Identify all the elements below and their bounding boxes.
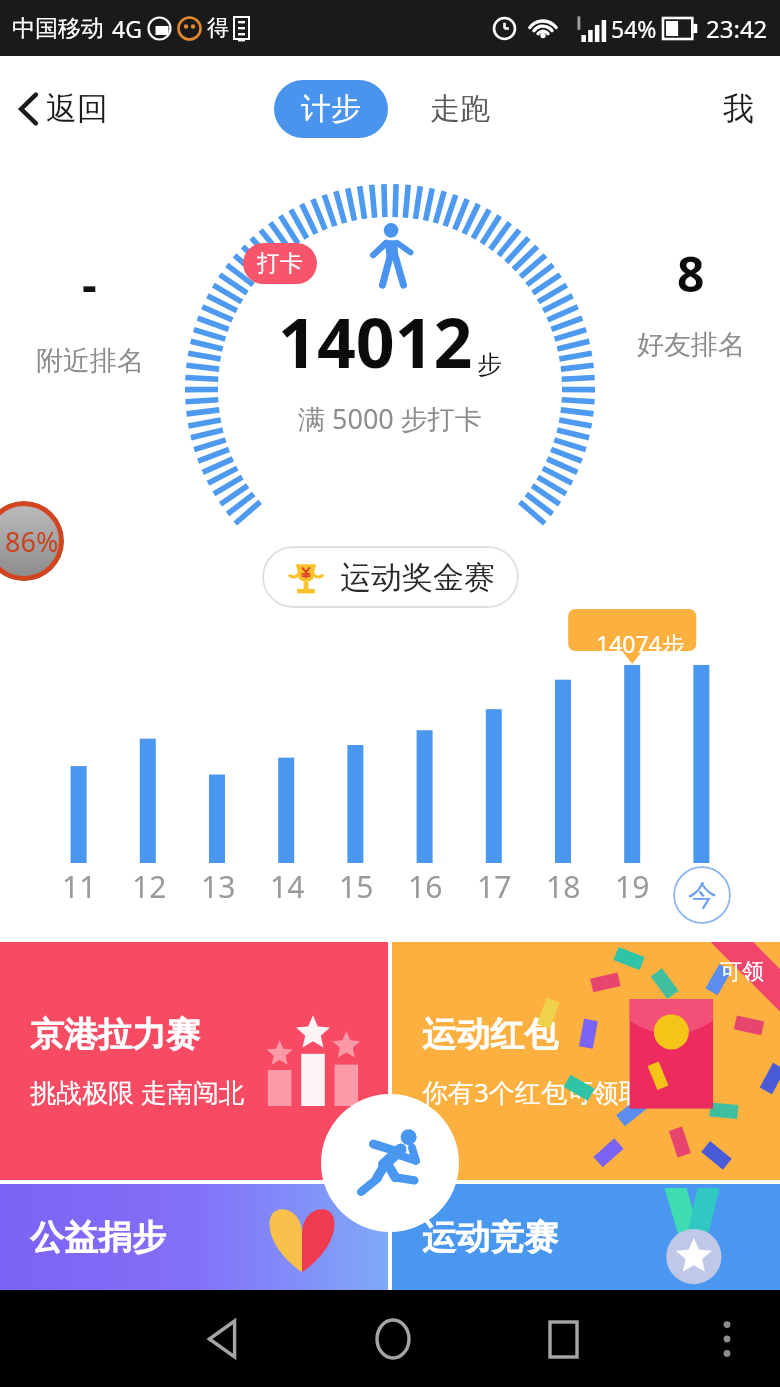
staticText: 中国移动 — [12, 14, 104, 43]
button[interactable]: 16 — [391, 866, 460, 907]
button[interactable]: Back — [185, 1302, 259, 1376]
staticText: 86% — [5, 523, 59, 560]
staticText: 你有3个红包可领取 — [422, 1074, 645, 1110]
button[interactable]: 运动红包 — [392, 942, 780, 1180]
button[interactable]: 11 — [44, 866, 114, 907]
button[interactable]: Recent apps — [526, 1302, 600, 1376]
button[interactable]: 8 — [613, 241, 768, 362]
staticText: 今 — [688, 877, 717, 914]
staticText: 附近排名 — [36, 344, 144, 378]
button[interactable]: 运动竞赛 — [392, 1184, 780, 1290]
staticText: 18 — [546, 866, 581, 907]
staticText: 12 — [132, 866, 167, 907]
button[interactable]: 返回 — [10, 81, 116, 136]
staticText: - — [82, 253, 97, 316]
staticText: 返回 — [46, 89, 108, 128]
button[interactable]: 运动奖金赛 — [262, 546, 519, 608]
staticText: 步 — [477, 349, 502, 380]
button[interactable]: 13 — [184, 866, 253, 907]
staticText: 打卡 — [257, 249, 303, 278]
staticText: 我 — [723, 89, 754, 128]
button[interactable]: 15 — [322, 866, 391, 907]
staticText: 8 — [677, 241, 705, 306]
button[interactable]: Home — [356, 1302, 430, 1376]
staticText: 好友排名 — [637, 328, 745, 362]
button[interactable]: 京港拉力赛 — [0, 942, 388, 1180]
staticText: 运动红包 — [422, 1013, 558, 1056]
button[interactable]: 19 — [598, 866, 667, 907]
button[interactable]: 走跑 — [414, 80, 506, 138]
staticText: 14074步 — [596, 628, 685, 659]
button[interactable]: 公益捐步 — [0, 1184, 388, 1290]
staticText: 13 — [201, 866, 236, 907]
staticText: 19 — [615, 866, 650, 907]
staticText: 23:42 — [706, 12, 768, 45]
button[interactable]: 12 — [114, 866, 184, 907]
staticText: 满 5000 步打卡 — [298, 400, 482, 437]
staticText: 54% — [611, 13, 657, 44]
button[interactable]: 我 — [715, 81, 762, 136]
staticText: 16 — [408, 866, 443, 907]
staticText: 可领 — [720, 958, 764, 986]
button[interactable]: 14 — [253, 866, 322, 907]
staticText: 11 — [62, 866, 97, 907]
button[interactable]: Battery 86 percent — [0, 501, 64, 581]
staticText: 得 — [207, 14, 229, 42]
button[interactable]: - — [12, 253, 167, 378]
button[interactable]: Start running — [321, 1094, 459, 1232]
staticText: 15 — [339, 866, 374, 907]
staticText: 京港拉力赛 — [30, 1013, 200, 1056]
staticText: 走跑 — [430, 90, 490, 128]
staticText: 运动竞赛 — [422, 1216, 558, 1259]
button[interactable]: 17 — [460, 866, 529, 907]
staticText: 4G — [112, 13, 142, 44]
button[interactable]: 18 — [529, 866, 598, 907]
staticText: 公益捐步 — [30, 1216, 166, 1259]
button[interactable]: More options — [696, 1308, 758, 1370]
button[interactable]: 计步 — [274, 80, 388, 138]
button[interactable]: 今 — [673, 866, 731, 924]
staticText: 计步 — [301, 90, 361, 128]
staticText: 14 — [270, 866, 305, 907]
staticText: 运动奖金赛 — [340, 558, 495, 597]
staticText: 14012 — [278, 295, 473, 388]
staticText: 17 — [477, 866, 512, 907]
staticText: 挑战极限 走南闯北 — [30, 1074, 245, 1110]
button[interactable]: 打卡 — [243, 243, 317, 284]
